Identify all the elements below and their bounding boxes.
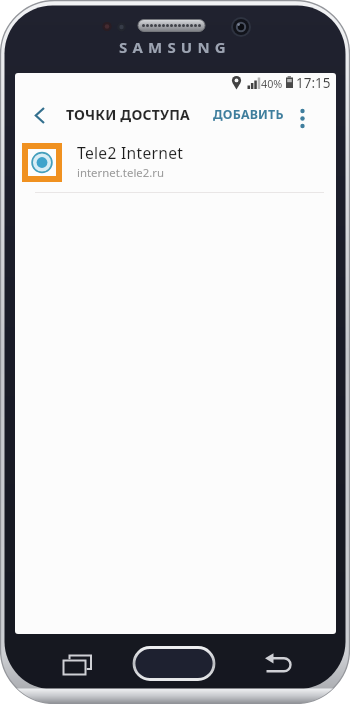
staticText: SAMSUNG [119, 37, 231, 57]
button[interactable] [56, 648, 96, 680]
button[interactable] [258, 648, 298, 680]
staticText: internet.tele2.ru [77, 165, 165, 181]
button[interactable] [134, 647, 214, 680]
button[interactable]: ДОБАВИТЬ [213, 106, 284, 123]
staticText: Tele2 Internet [77, 142, 184, 163]
button[interactable] [294, 104, 311, 133]
staticText: 17:15 [296, 74, 331, 92]
button[interactable] [15, 139, 336, 193]
staticText: ДОБАВИТЬ [213, 106, 284, 123]
staticText: 40% [261, 76, 283, 91]
button[interactable] [25, 103, 55, 129]
staticText: ТОЧКИ ДОСТУПА [66, 105, 190, 124]
